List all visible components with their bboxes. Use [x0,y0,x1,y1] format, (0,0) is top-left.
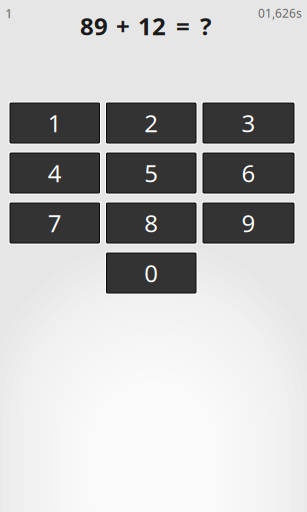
button[interactable]: 0 [105,251,197,294]
staticText: 6 [241,157,255,189]
button[interactable]: 3 [201,101,295,144]
staticText: 0 [144,257,158,289]
staticText: 5 [144,157,158,189]
button[interactable]: 7 [8,201,101,244]
staticText: 3 [241,107,255,139]
staticText: 1 [48,107,62,139]
button[interactable]: 1 [8,101,101,144]
button[interactable]: 6 [201,151,295,194]
staticText: 89 + 12 = ? [80,10,211,42]
staticText: 2 [144,107,158,139]
button[interactable]: 5 [105,151,197,194]
staticText: 7 [48,207,62,239]
staticText: 9 [241,207,255,239]
staticText: 01,626s [258,5,302,21]
button[interactable]: 2 [105,101,197,144]
staticText: 8 [144,207,158,239]
button[interactable]: 4 [8,151,101,194]
staticText: 4 [48,157,62,189]
button[interactable]: 9 [201,201,295,244]
staticText: 1 [5,4,13,22]
button[interactable]: 8 [105,201,197,244]
